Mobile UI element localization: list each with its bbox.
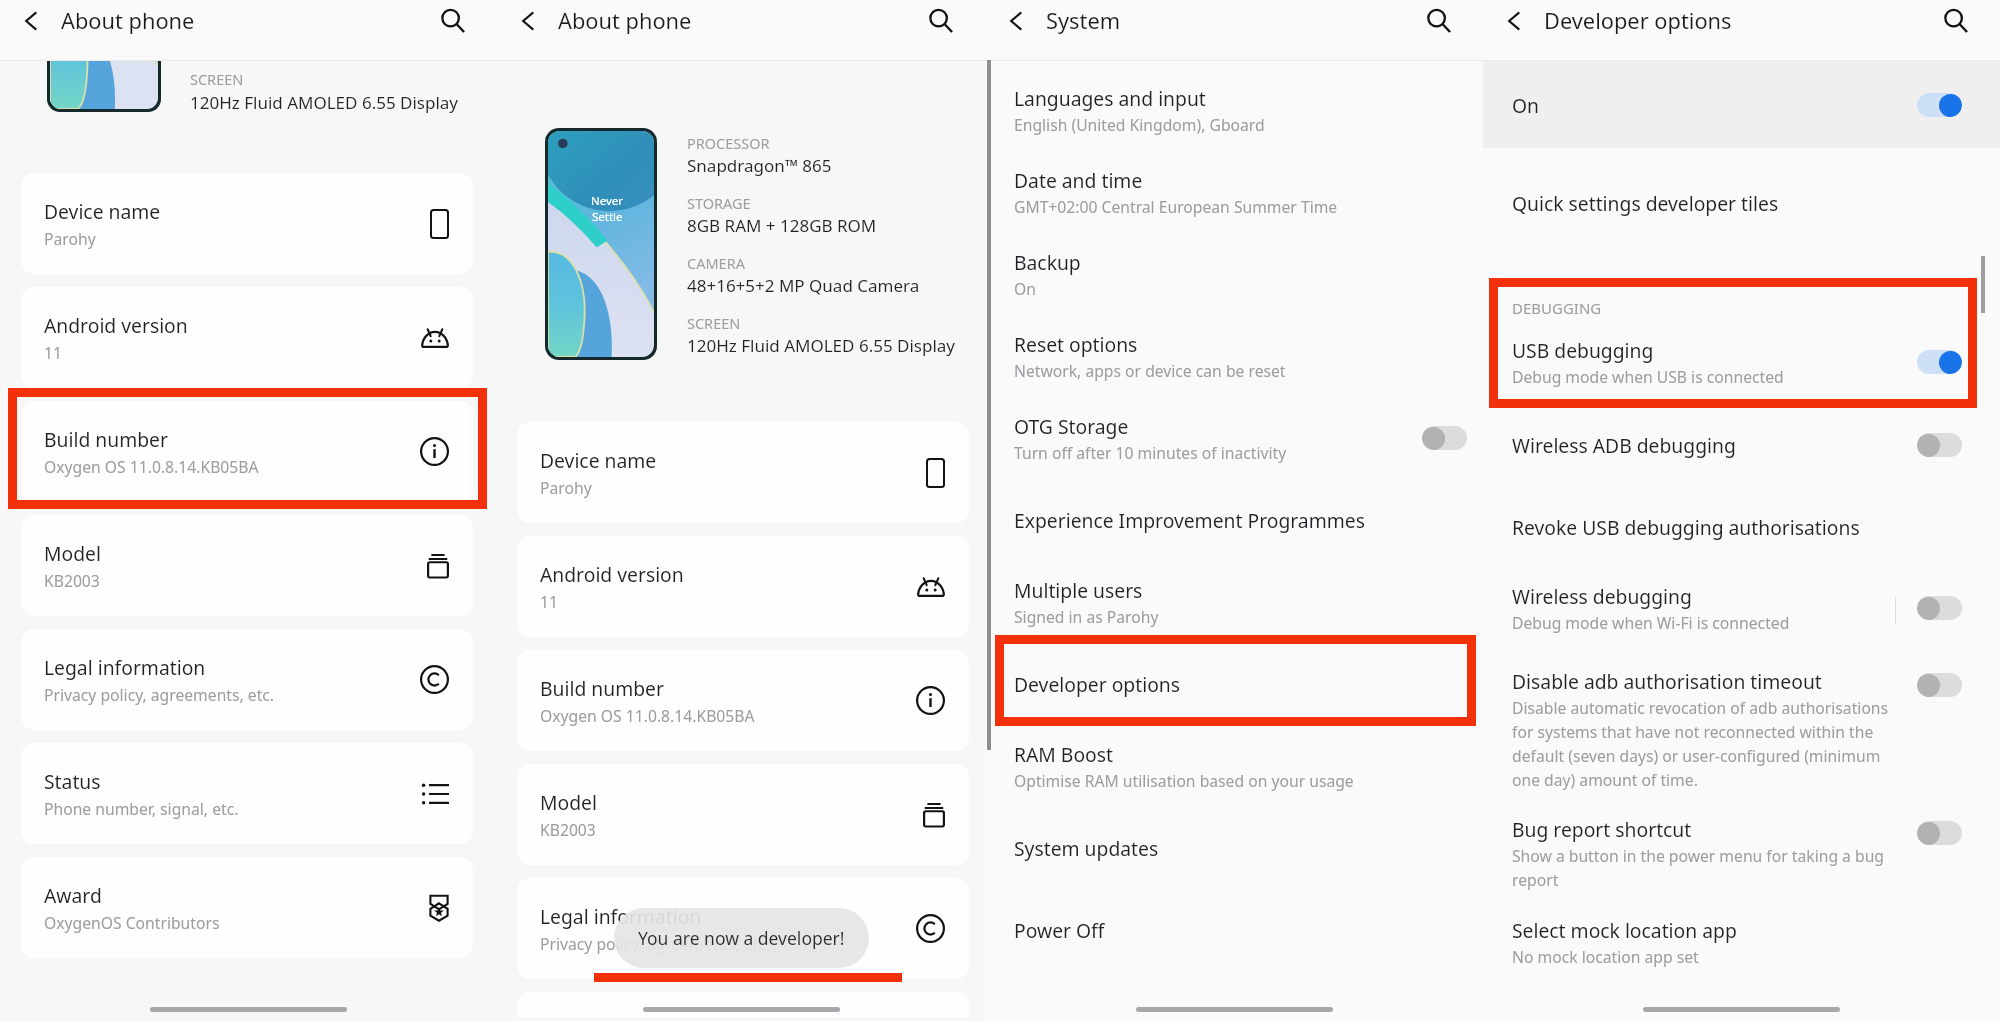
button[interactable]: Bug report shortcut: [1483, 796, 2000, 896]
staticText: Device name: [540, 447, 657, 473]
staticText: Never: [591, 193, 624, 209]
staticText: Parohy: [540, 477, 592, 498]
staticText: Android version: [44, 312, 188, 338]
staticText: Experience Improvement Programmes: [1014, 507, 1365, 533]
staticText: Privacy policy, agreements, etc.: [44, 684, 275, 705]
button[interactable]: Reset options: [985, 315, 1483, 397]
button[interactable]: Switch off: [1917, 673, 1962, 697]
button[interactable]: Back: [0, 0, 61, 41]
button[interactable]: Device name: [517, 422, 969, 523]
button[interactable]: Wireless debugging: [1483, 566, 2000, 650]
button[interactable]: Switch on: [1917, 350, 1962, 374]
button[interactable]: USB debugging: [1483, 321, 2000, 403]
staticText: Quick settings developer tiles: [1512, 190, 1779, 216]
button[interactable]: Model: [517, 764, 969, 865]
staticText: Backup: [1014, 249, 1081, 275]
button[interactable]: Multiple users: [985, 561, 1483, 643]
button[interactable]: Switch off: [1917, 433, 1962, 457]
staticText: KB2003: [44, 570, 100, 591]
staticText: Android version: [540, 561, 684, 587]
button[interactable]: Build number: [21, 401, 473, 502]
button[interactable]: System updates: [985, 807, 1483, 889]
button[interactable]: Revoke USB debugging authorisations: [1483, 487, 2000, 566]
staticText: Turn off after 10 minutes of inactivity: [1014, 442, 1287, 463]
staticText: DEBUGGING: [1512, 298, 1602, 318]
staticText: Debug mode when USB is connected: [1512, 366, 1784, 387]
staticText: You are now a developer!: [638, 926, 845, 950]
staticText: 8GB RAM + 128GB ROM: [687, 214, 877, 237]
button[interactable]: Legal information: [21, 629, 473, 730]
button[interactable]: Backup: [985, 233, 1483, 315]
button[interactable]: Search: [408, 0, 497, 41]
staticText: Wireless debugging: [1512, 583, 1692, 609]
staticText: Legal information: [540, 903, 702, 929]
staticText: Legal information: [44, 654, 206, 680]
staticText: Signed in as Parohy: [1014, 606, 1159, 627]
staticText: USB debugging: [1512, 337, 1654, 363]
button[interactable]: Select mock location app: [1483, 896, 2000, 988]
staticText: OxygenOS Contributors: [44, 912, 220, 933]
staticText: Revoke USB debugging authorisations: [1512, 514, 1860, 540]
button[interactable]: Quick settings developer tiles: [1483, 162, 2000, 244]
staticText: KB2003: [540, 819, 596, 840]
button[interactable]: Back: [985, 0, 1046, 41]
staticText: Network, apps or device can be reset: [1014, 360, 1286, 381]
button[interactable]: Date and time: [985, 151, 1483, 233]
staticText: Debug mode when Wi-Fi is connected: [1512, 612, 1790, 633]
staticText: Award: [44, 882, 102, 908]
button[interactable]: Wireless ADB debugging: [1483, 403, 2000, 487]
staticText: STORAGE: [687, 193, 751, 213]
staticText: CAMERA: [687, 253, 745, 273]
staticText: System updates: [1014, 835, 1159, 861]
staticText: 11: [540, 591, 558, 612]
staticText: About phone: [61, 6, 195, 36]
staticText: 120Hz Fluid AMOLED 6.55 Display: [190, 91, 459, 114]
staticText: Languages and input: [1014, 85, 1206, 111]
button[interactable]: Power Off: [985, 889, 1483, 971]
button[interactable]: Switch off: [1422, 426, 1467, 450]
staticText: SCREEN: [190, 69, 244, 89]
staticText: RAM Boost: [1014, 741, 1113, 767]
button[interactable]: Legal information: [517, 878, 969, 979]
button[interactable]: Switch off: [1917, 821, 1962, 845]
button[interactable]: Disable adb authorisation timeout: [1483, 650, 2000, 796]
button[interactable]: Search: [1911, 0, 2000, 41]
button[interactable]: Back: [1483, 0, 1544, 41]
staticText: Date and time: [1014, 167, 1143, 193]
button[interactable]: Back: [497, 0, 558, 41]
button[interactable]: RAM Boost: [985, 725, 1483, 807]
button[interactable]: On: [1483, 61, 2000, 148]
staticText: Developer options: [1014, 671, 1180, 697]
button[interactable]: Status: [21, 743, 473, 844]
staticText: PROCESSOR: [687, 133, 770, 153]
staticText: Oxygen OS 11.0.8.14.KB05BA: [44, 456, 259, 477]
staticText: Privacy policy, agreements, etc.: [540, 933, 771, 954]
staticText: OTG Storage: [1014, 413, 1129, 439]
staticText: System: [1046, 6, 1121, 36]
staticText: Device name: [44, 198, 161, 224]
button[interactable]: Android version: [21, 287, 473, 388]
button[interactable]: Device name: [21, 173, 473, 274]
button[interactable]: Search: [1394, 0, 1483, 41]
button[interactable]: Award: [21, 857, 473, 958]
button[interactable]: Switch on: [1917, 93, 1962, 117]
button[interactable]: Search: [896, 0, 985, 41]
button[interactable]: Experience Improvement Programmes: [985, 479, 1483, 561]
staticText: Multiple users: [1014, 577, 1143, 603]
button[interactable]: Developer options: [985, 643, 1483, 725]
staticText: No mock location app set: [1512, 946, 1699, 967]
button[interactable]: Model: [21, 515, 473, 616]
button[interactable]: OTG Storage: [985, 397, 1483, 479]
button[interactable]: Switch off: [1917, 596, 1962, 620]
staticText: Developer options: [1544, 6, 1732, 36]
staticText: GMT+02:00 Central European Summer Time: [1014, 196, 1338, 217]
staticText: 48+16+5+2 MP Quad Camera: [687, 274, 920, 297]
staticText: Disable automatic revocation of adb auth…: [1512, 697, 1889, 790]
button[interactable]: Android version: [517, 536, 969, 637]
staticText: SCREEN: [687, 313, 741, 333]
staticText: Model: [44, 540, 101, 566]
staticText: About phone: [558, 6, 692, 36]
staticText: Show a button in the power menu for taki…: [1512, 845, 1884, 890]
button[interactable]: Languages and input: [985, 69, 1483, 151]
button[interactable]: Build number: [517, 650, 969, 751]
